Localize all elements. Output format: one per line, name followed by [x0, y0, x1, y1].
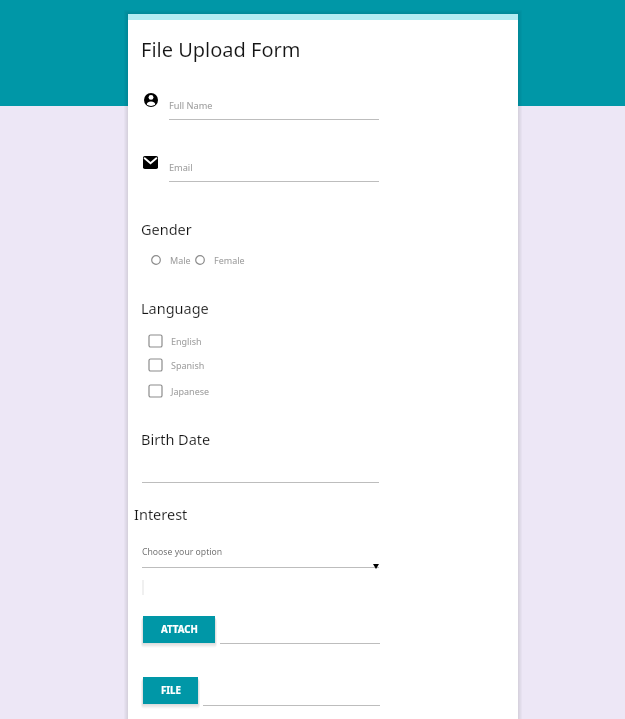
- staticText: Choose your option: [142, 546, 223, 558]
- button[interactable]: Spanish: [149, 359, 205, 371]
- staticText: Japanese: [171, 385, 210, 397]
- staticText: Gender: [141, 219, 192, 239]
- button[interactable]: Japanese: [149, 385, 210, 397]
- staticText: Male: [170, 254, 191, 266]
- staticText: Full Name: [169, 99, 213, 112]
- button[interactable]: Female: [195, 254, 245, 266]
- staticText: ATTACH: [161, 623, 198, 636]
- staticText: English: [171, 335, 202, 347]
- staticText: FILE: [161, 684, 181, 697]
- button[interactable]: FILE: [143, 677, 198, 704]
- button[interactable]: Full name: [169, 94, 379, 120]
- staticText: Female: [214, 254, 245, 266]
- button[interactable]: ATTACH: [143, 616, 215, 643]
- button[interactable]: Male: [151, 254, 191, 266]
- staticText: Language: [141, 298, 209, 318]
- staticText: File Upload Form: [141, 36, 301, 63]
- button[interactable]: Email: [169, 156, 379, 182]
- button[interactable]: Birth date: [142, 462, 379, 483]
- staticText: Birth Date: [141, 429, 211, 449]
- staticText: Email: [169, 161, 193, 174]
- staticText: Interest: [134, 504, 188, 524]
- staticText: Spanish: [171, 359, 205, 371]
- button[interactable]: Choose your option: [142, 543, 379, 568]
- button[interactable]: English: [149, 335, 202, 347]
